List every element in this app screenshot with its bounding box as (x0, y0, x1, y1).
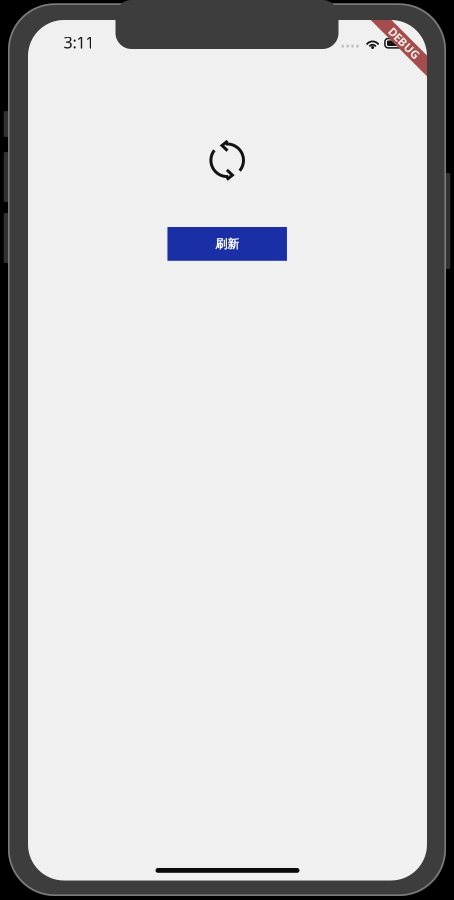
staticText: DEBUG (385, 35, 424, 51)
staticText: 3:11 (63, 31, 94, 53)
staticText: 刷新 (215, 236, 239, 251)
button[interactable]: 刷新 (167, 227, 287, 261)
